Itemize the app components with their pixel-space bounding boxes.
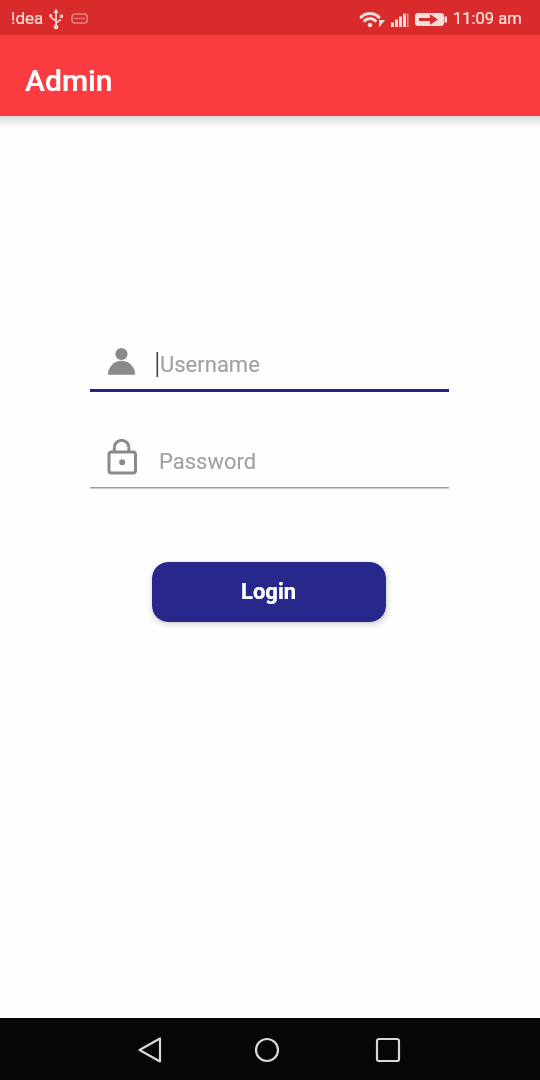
button[interactable] (117, 1018, 181, 1080)
staticText: Login (241, 579, 297, 605)
button[interactable]: Username (90, 340, 449, 394)
staticText: 11:09 am (453, 9, 522, 28)
button[interactable]: Login (152, 562, 386, 622)
button[interactable]: Password (90, 436, 449, 490)
staticText: Admin (25, 63, 113, 98)
button[interactable] (235, 1018, 299, 1080)
staticText: Username (160, 352, 260, 378)
staticText: Password (159, 449, 257, 475)
button[interactable] (356, 1018, 420, 1080)
staticText: !dea (11, 8, 44, 28)
